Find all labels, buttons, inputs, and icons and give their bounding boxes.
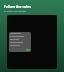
button[interactable]: Continue [26,49,30,51]
staticText: to access this content [4,10,27,13]
staticText: Follow the rules [4,4,31,9]
button[interactable]: Continue [7,15,57,69]
